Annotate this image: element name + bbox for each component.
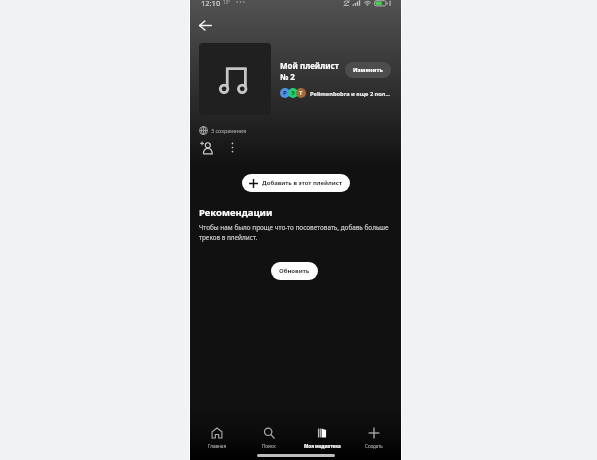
button[interactable]: Back — [195, 15, 215, 35]
staticText: № 2 — [280, 71, 295, 82]
staticText: 13° — [223, 0, 231, 5]
staticText: Рекомендации — [199, 206, 273, 219]
staticText: Pelimenbobra и еще 2 пол... — [310, 90, 391, 98]
button[interactable]: Добавить в этот плейлист — [242, 174, 350, 192]
staticText: Поиск — [262, 443, 276, 449]
button[interactable]: Add people — [196, 137, 216, 157]
button[interactable]: Главная — [192, 426, 242, 454]
staticText: Главная — [208, 443, 227, 449]
staticText: 12:10 — [201, 0, 221, 8]
staticText: Моя медиатека — [304, 443, 341, 449]
button[interactable]: Обновить — [271, 262, 318, 280]
button[interactable]: Playlist cover — [199, 43, 271, 115]
staticText: Чтобы нам было проще что-то посоветовать… — [199, 223, 389, 242]
staticText: P — [283, 89, 287, 97]
staticText: Создать — [365, 443, 383, 449]
button[interactable]: Создать — [349, 426, 399, 454]
button[interactable]: Моя медиатека — [297, 426, 347, 454]
staticText: 3 сохранения — [211, 127, 247, 134]
staticText: Мой плейлист — [280, 60, 339, 71]
staticText: Изменить — [353, 66, 383, 74]
staticText: Добавить в этот плейлист — [262, 179, 343, 187]
staticText: Обновить — [279, 267, 310, 275]
button[interactable]: Изменить — [345, 62, 391, 78]
staticText: Э — [291, 89, 295, 97]
staticText: T — [299, 89, 303, 97]
button[interactable]: Поиск — [244, 426, 294, 454]
button[interactable]: More options — [222, 137, 242, 157]
